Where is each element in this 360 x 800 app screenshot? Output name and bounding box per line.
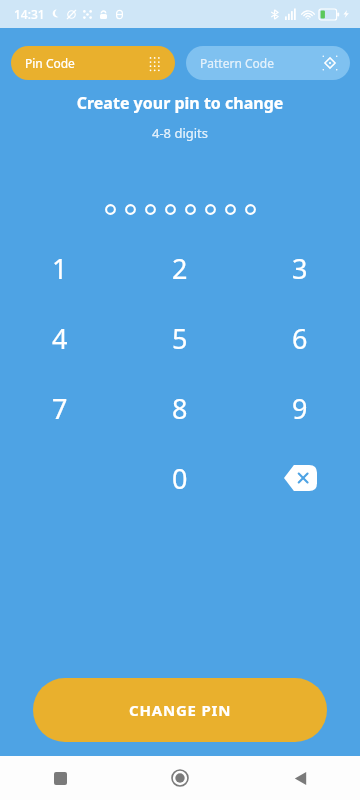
button[interactable]: 9: [240, 373, 360, 443]
button[interactable]: 8: [120, 373, 240, 443]
staticText: 1: [52, 250, 68, 287]
staticText: 2: [172, 250, 188, 287]
staticText: 9: [292, 390, 308, 427]
staticText: Pin Code: [25, 55, 147, 71]
button[interactable]: CHANGE PIN: [33, 678, 327, 742]
staticText: 4-8 digits: [0, 124, 360, 142]
button[interactable]: 0: [120, 443, 240, 513]
button[interactable]: 5: [120, 303, 240, 373]
button[interactable]: 6: [240, 303, 360, 373]
button[interactable]: 4: [0, 303, 120, 373]
staticText: 6: [292, 320, 308, 357]
button[interactable]: Backspace: [240, 443, 360, 513]
staticText: 14:31: [14, 6, 45, 22]
staticText: Create your pin to change: [0, 92, 360, 114]
staticText: 4: [52, 320, 68, 357]
button[interactable]: Recent apps: [0, 756, 120, 800]
button[interactable]: 2: [120, 233, 240, 303]
button[interactable]: Back: [240, 756, 360, 800]
button[interactable]: 7: [0, 373, 120, 443]
button[interactable]: 3: [240, 233, 360, 303]
button[interactable]: Home: [120, 756, 240, 800]
button[interactable]: 1: [0, 233, 120, 303]
staticText: 7: [52, 390, 68, 427]
staticText: CHANGE PIN: [129, 700, 232, 720]
button[interactable]: Pattern Code: [186, 46, 350, 80]
staticText: 5: [172, 320, 188, 357]
button[interactable]: Pin Code: [11, 46, 175, 80]
staticText: 8: [172, 390, 188, 427]
staticText: 3: [292, 250, 308, 287]
staticText: 0: [172, 460, 188, 497]
staticText: Pattern Code: [200, 55, 322, 71]
